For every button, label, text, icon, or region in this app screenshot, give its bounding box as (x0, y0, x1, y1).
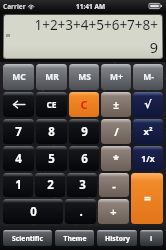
staticText: M- (143, 71, 154, 83)
staticText: 2 (47, 177, 54, 193)
button[interactable]: = (131, 173, 163, 224)
button[interactable]: 4 (3, 146, 34, 171)
staticText: 3 (79, 177, 86, 193)
button[interactable]: MR (36, 64, 67, 90)
staticText: 1 (15, 177, 22, 193)
button[interactable]: 7 (3, 119, 34, 144)
button[interactable]: 5 (36, 146, 67, 171)
button[interactable]: MC (3, 64, 34, 90)
staticText: 11:41 AM (76, 2, 106, 11)
staticText: C (80, 97, 88, 112)
button[interactable]: √ (133, 92, 163, 117)
button[interactable]: 0 (3, 199, 63, 224)
staticText: M (6, 33, 10, 39)
staticText: - (112, 178, 116, 193)
staticText: 5 (48, 151, 55, 167)
staticText: 1/x (141, 153, 155, 165)
button[interactable]: 8 (36, 119, 67, 144)
other: Backspace (3, 92, 34, 117)
button[interactable]: 3 (67, 173, 97, 197)
button[interactable]: * (101, 146, 131, 171)
button[interactable]: Theme (55, 230, 94, 246)
button[interactable]: 2 (35, 173, 65, 197)
button[interactable]: M+ (101, 64, 131, 90)
staticText: MC (12, 71, 26, 83)
staticText: = (144, 191, 151, 207)
button[interactable]: 1/x (133, 146, 163, 171)
button[interactable]: 6 (69, 146, 99, 171)
button[interactable]: 1 (3, 173, 33, 197)
staticText: x² (143, 125, 153, 138)
staticText: ± (113, 98, 119, 112)
button[interactable]: / (101, 119, 131, 144)
staticText: History (105, 234, 130, 243)
staticText: / (114, 124, 119, 139)
staticText: MS (78, 71, 91, 83)
button[interactable]: - (99, 173, 129, 197)
button[interactable]: Info (140, 230, 163, 246)
staticText: . (79, 204, 83, 220)
staticText: 0 (30, 204, 37, 220)
staticText: Theme (63, 234, 87, 243)
button[interactable]: M- (133, 64, 163, 90)
button[interactable]: C (69, 92, 99, 117)
button[interactable]: . (65, 199, 96, 224)
staticText: Scientific (12, 234, 43, 243)
staticText: CE (46, 99, 57, 111)
button[interactable]: CE (36, 92, 67, 117)
button[interactable]: x² (133, 119, 163, 144)
staticText: √ (144, 98, 152, 111)
other: Info (140, 230, 163, 246)
staticText: M+ (110, 71, 123, 83)
button[interactable]: History (97, 230, 137, 246)
button[interactable]: MS (69, 64, 99, 90)
button[interactable]: ± (101, 92, 131, 117)
staticText: 9 (81, 124, 88, 140)
button[interactable]: Backspace (3, 92, 34, 117)
staticText: 7 (15, 124, 22, 140)
button[interactable]: + (98, 199, 129, 224)
staticText: 1+2+3+4+5+6+7+8+ (34, 16, 158, 34)
staticText: MR (45, 71, 59, 83)
button[interactable]: 9 (69, 119, 99, 144)
staticText: i (150, 233, 153, 243)
staticText: 8 (48, 124, 55, 140)
staticText: * (113, 151, 119, 166)
staticText: 6 (81, 151, 88, 167)
staticText: 9 (149, 37, 158, 57)
button[interactable]: Scientific (3, 230, 52, 246)
staticText: 4 (15, 151, 22, 167)
staticText: + (110, 204, 117, 219)
staticText: Carrier (3, 2, 26, 11)
